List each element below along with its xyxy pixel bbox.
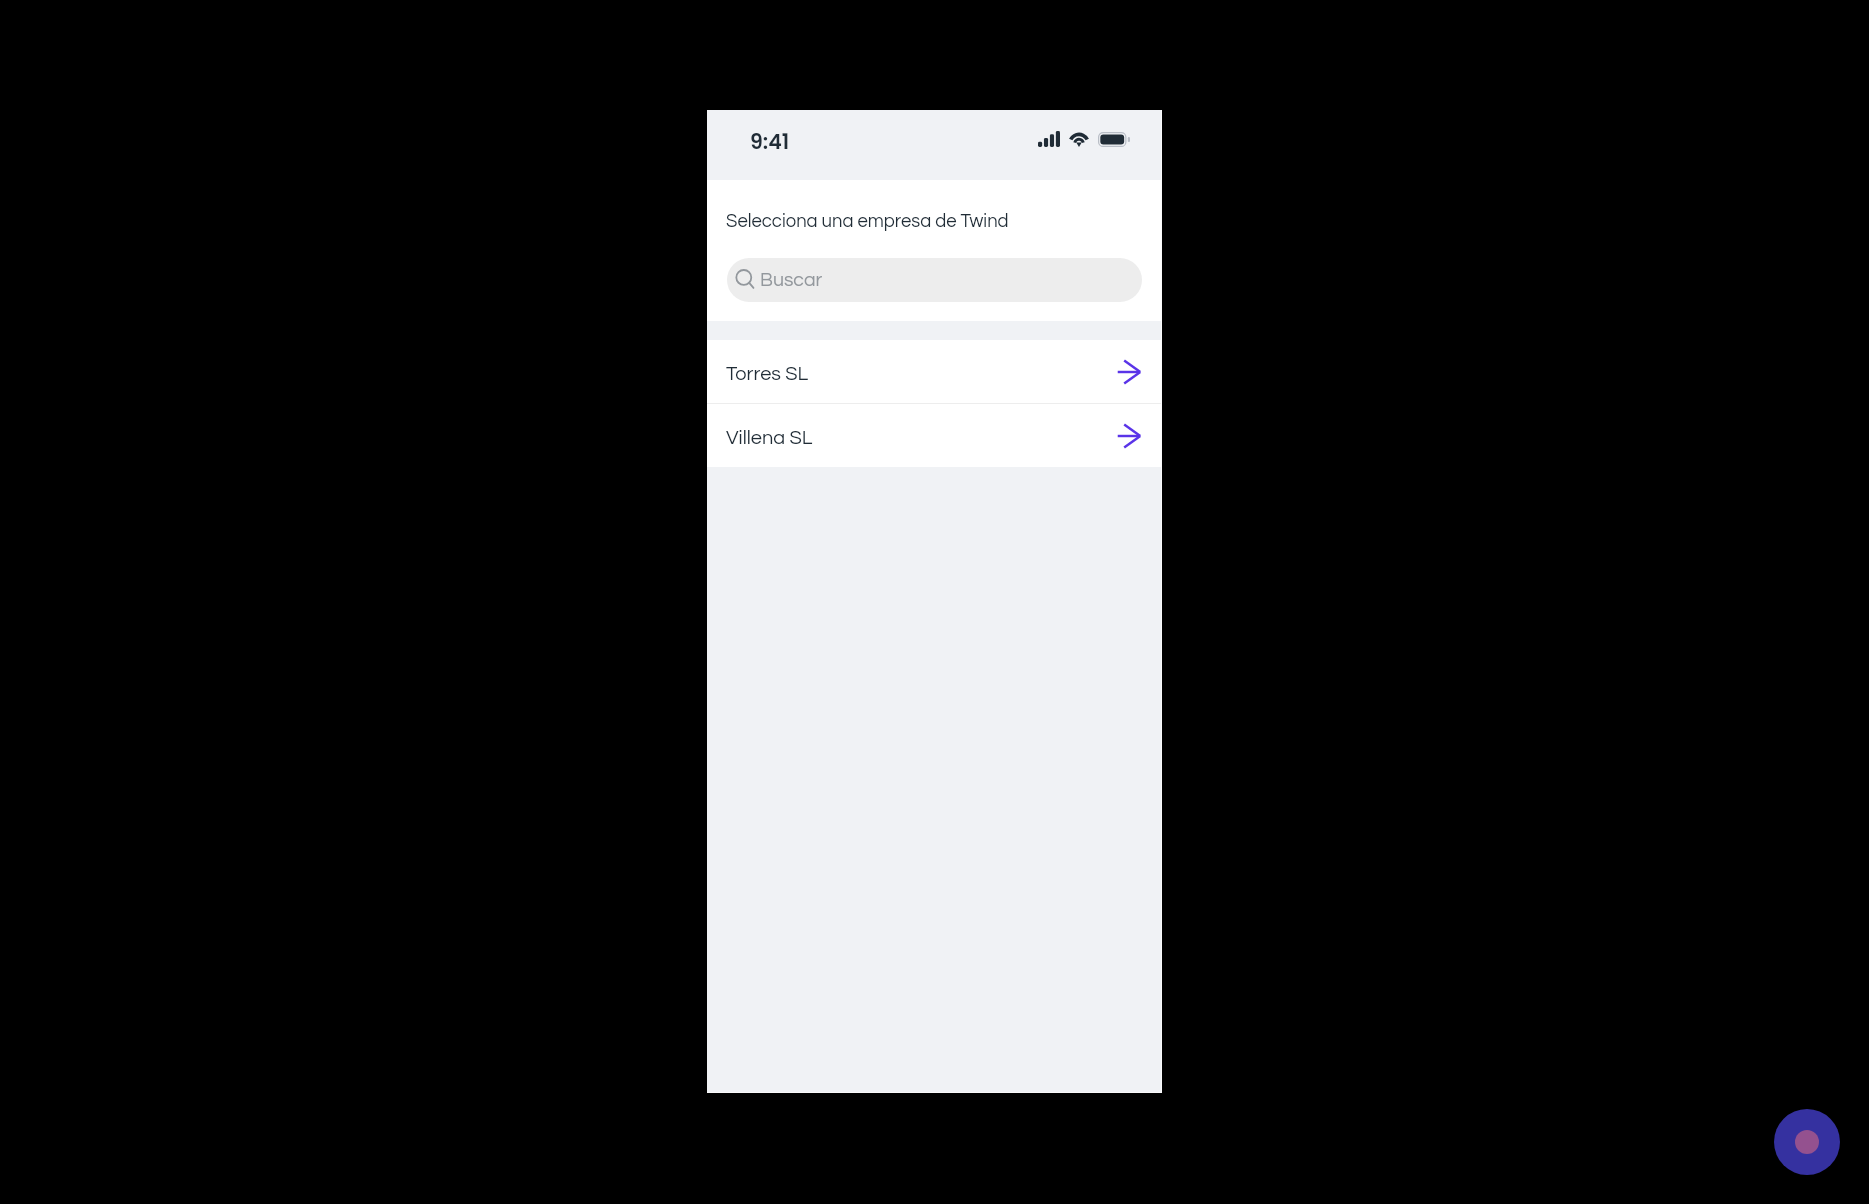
button[interactable]: Villena SL	[707, 404, 1161, 467]
button[interactable]: Abrir Villena SL	[1117, 424, 1141, 448]
staticText: Villena SL	[726, 428, 813, 449]
staticText: 9:41	[750, 127, 790, 156]
staticText: Buscar	[760, 270, 823, 290]
staticText: Selecciona una empresa de Twind	[726, 212, 1009, 231]
button[interactable]: Abrir Torres SL	[1117, 360, 1141, 384]
button[interactable]: Torres SL	[707, 340, 1161, 403]
button[interactable]: Buscar	[727, 258, 1142, 302]
staticText: Torres SL	[726, 364, 809, 385]
button[interactable]: Record	[1774, 1109, 1840, 1175]
